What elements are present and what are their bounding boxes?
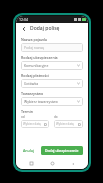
button[interactable]: Dodaj ubezpieczenie	[41, 146, 83, 155]
button[interactable]: Back	[68, 159, 77, 168]
button[interactable]: Wybierz towarzystwo	[21, 97, 83, 106]
button[interactable]: Gotówka	[21, 79, 83, 88]
staticText: Podaj nazwę	[24, 45, 45, 50]
button[interactable]: Wybierz datę	[54, 120, 83, 128]
staticText: 12:04	[19, 17, 28, 22]
button[interactable]: Wybierz datę	[21, 120, 49, 128]
staticText: Komunikacyjne	[24, 63, 49, 68]
staticText: od	[21, 115, 25, 119]
staticText: Nazwa pojazdu	[21, 37, 48, 42]
staticText: Anuluj	[23, 148, 35, 153]
button[interactable]: Komunikacyjne	[21, 61, 83, 70]
staticText: Wybierz datę	[23, 122, 41, 126]
button[interactable]: Back	[20, 25, 28, 33]
button[interactable]: Podaj nazwę	[21, 43, 83, 52]
staticText: Gotówka	[24, 81, 39, 86]
staticText: Rodzaj płatności	[21, 73, 49, 78]
staticText: Towarzystwo	[21, 91, 44, 96]
staticText: Wybierz datę	[56, 122, 74, 126]
staticText: do	[54, 115, 58, 119]
staticText: Termin	[21, 109, 33, 114]
button[interactable]: Anuluj	[21, 146, 37, 155]
staticText: Wybierz towarzystwo	[24, 99, 58, 104]
button[interactable]: Home	[48, 159, 57, 168]
staticText: Dodaj polisę	[30, 25, 60, 32]
button[interactable]: Recent apps	[27, 159, 36, 168]
staticText: Dodaj ubezpieczenie	[45, 148, 79, 153]
staticText: Rodzaj ubezpieczenia	[21, 55, 58, 60]
